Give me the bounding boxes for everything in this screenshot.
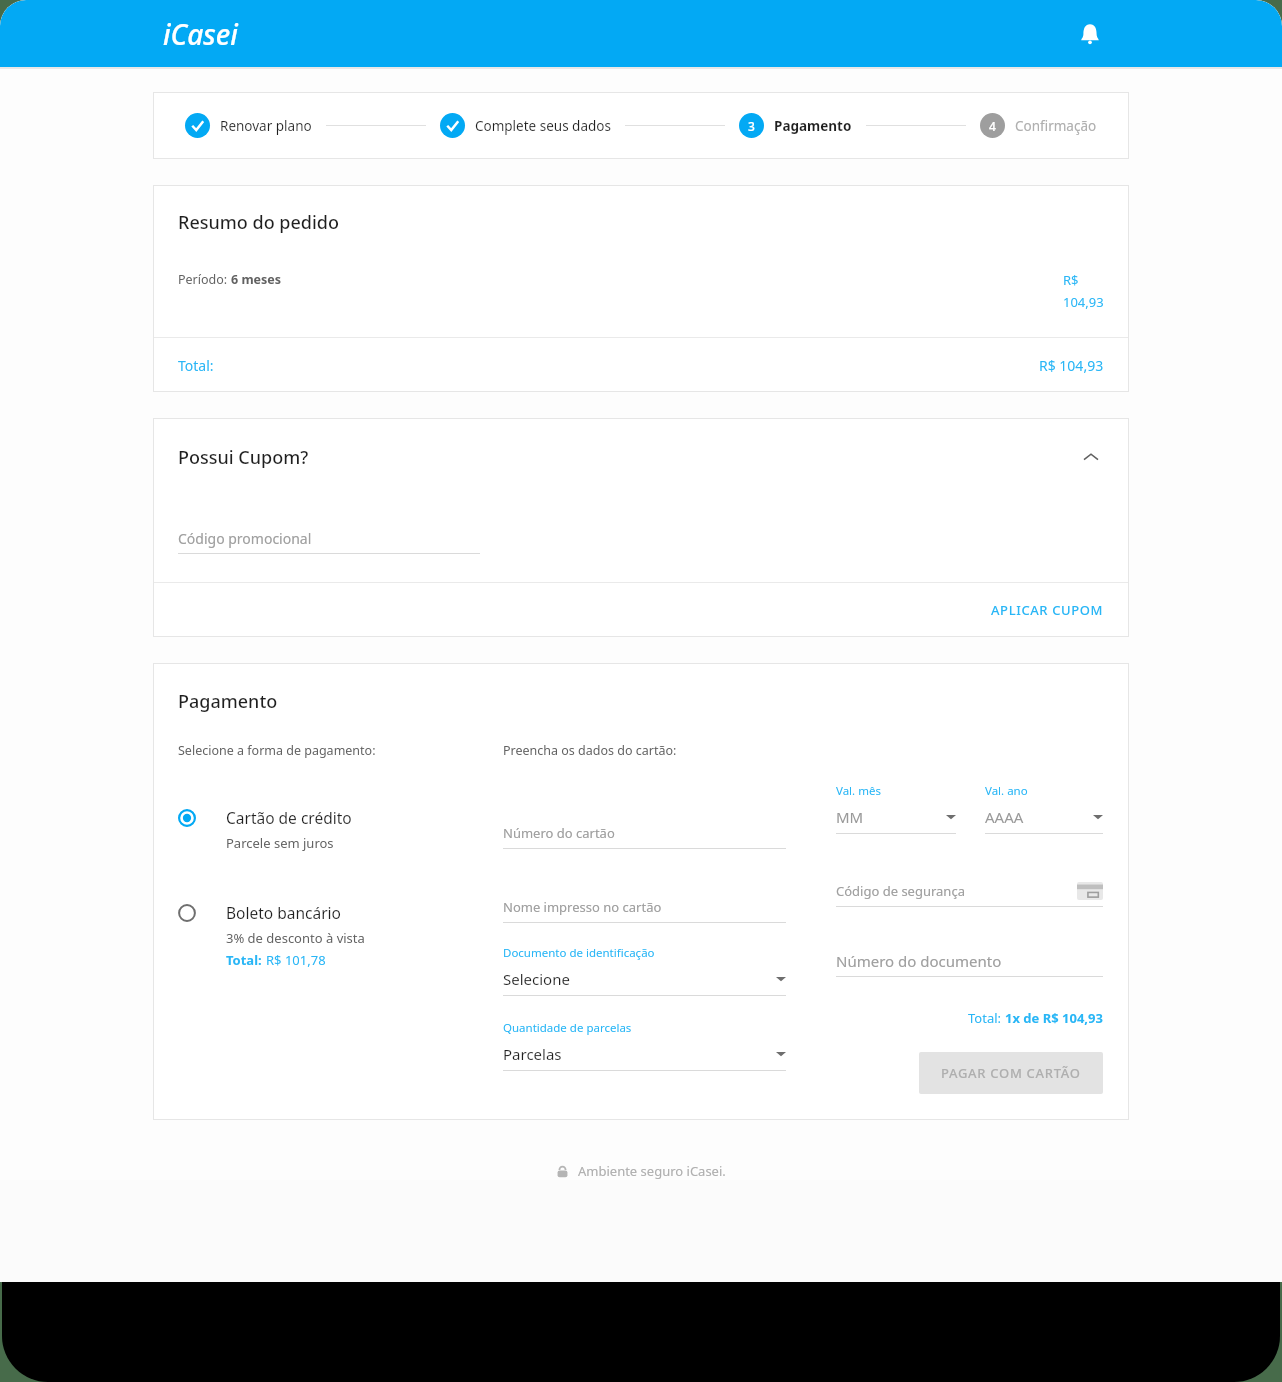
staticText: Boleto bancário <box>226 902 341 923</box>
button[interactable]: Complete seus dados <box>440 113 611 138</box>
staticText: Val. mês <box>836 783 881 799</box>
staticText: 104,93 <box>1063 293 1104 311</box>
staticText: APLICAR CUPOM <box>991 601 1104 619</box>
other: Recolher <box>1078 444 1104 470</box>
button[interactable]: APLICAR CUPOM <box>966 591 1129 629</box>
staticText: 4 <box>989 118 996 134</box>
staticText: R$ <box>1063 271 1079 289</box>
staticText: Número do documento <box>836 951 1103 971</box>
staticText: PAGAR COM CARTÃO <box>941 1064 1081 1082</box>
staticText: R$ 101,78 <box>266 951 326 969</box>
staticText: Selecione <box>503 969 776 989</box>
staticText: Cartão de crédito <box>226 807 352 828</box>
staticText: Nome impresso no cartão <box>503 898 786 916</box>
staticText: Total: <box>178 356 214 375</box>
staticText: Complete seus dados <box>475 117 611 135</box>
staticText: Selecione a forma de pagamento: <box>178 742 376 759</box>
staticText: Documento de identificação <box>503 945 655 961</box>
staticText: Código de segurança <box>836 882 1077 900</box>
staticText: Resumo do pedido <box>178 210 339 235</box>
staticText: Período: <box>178 271 231 288</box>
button[interactable]: Possui Cupom? <box>178 444 1104 470</box>
staticText: 3% de desconto à vista <box>226 929 365 947</box>
staticText: iCasei <box>163 15 238 53</box>
staticText: 3 <box>748 118 755 134</box>
staticText: Parcelas <box>503 1044 776 1064</box>
staticText: Confirmação <box>1015 117 1097 135</box>
staticText: Preencha os dados do cartão: <box>503 742 677 759</box>
button[interactable]: Renovar plano <box>185 113 312 138</box>
staticText: Parcele sem juros <box>226 834 334 852</box>
staticText: 1x de R$ 104,93 <box>1005 1009 1103 1027</box>
button[interactable]: 3 <box>739 113 852 138</box>
staticText: Possui Cupom? <box>178 445 309 470</box>
button[interactable]: 4 <box>980 113 1097 138</box>
staticText: Ambiente seguro iCasei. <box>578 1162 726 1180</box>
staticText: Val. ano <box>985 783 1028 799</box>
staticText: Quantidade de parcelas <box>503 1020 632 1036</box>
staticText: 6 meses <box>231 271 282 288</box>
staticText: R$ 104,93 <box>1039 356 1104 375</box>
staticText: Renovar plano <box>220 117 312 135</box>
staticText: Número do cartão <box>503 824 786 842</box>
button[interactable]: Cartão de crédito <box>178 807 478 852</box>
staticText: Pagamento <box>178 689 278 714</box>
staticText: Código promocional <box>178 529 480 548</box>
button[interactable]: PAGAR COM CARTÃO <box>919 1052 1103 1094</box>
staticText: MM <box>836 807 946 827</box>
staticText: Pagamento <box>774 117 852 135</box>
staticText: AAAA <box>985 807 1093 827</box>
staticText: Total: <box>226 951 262 969</box>
button[interactable]: Boleto bancário <box>178 902 478 969</box>
staticText: Total: <box>968 1009 1005 1027</box>
button[interactable]: Notificações <box>1068 12 1112 56</box>
